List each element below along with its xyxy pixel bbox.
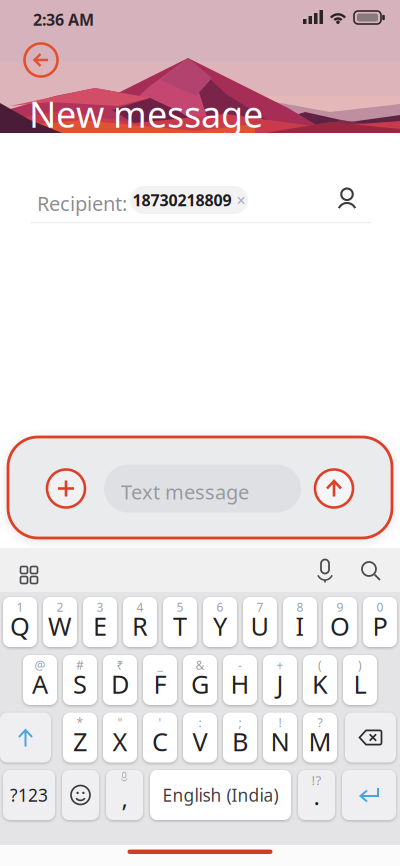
staticText: ' — [158, 714, 161, 730]
staticText: R — [132, 609, 148, 643]
button[interactable]: 6 — [203, 597, 237, 647]
staticText: 18730218809 — [132, 189, 231, 211]
staticText: * — [76, 714, 83, 730]
button[interactable]: - — [223, 655, 257, 705]
staticText: : — [198, 714, 201, 730]
staticText: T — [173, 609, 187, 643]
staticText: E — [93, 609, 107, 643]
button[interactable]: ; — [223, 712, 257, 762]
staticText: Q — [10, 609, 30, 643]
staticText: 4 — [136, 599, 143, 615]
button[interactable]: Comma — [106, 770, 143, 820]
button[interactable]: Add attachment — [47, 469, 85, 507]
staticText: . — [313, 780, 319, 812]
staticText: - — [238, 657, 242, 673]
staticText: S — [73, 667, 87, 701]
button[interactable]: Remove recipient 18730218809 — [130, 186, 248, 214]
staticText: 5 — [176, 599, 183, 615]
staticText: K — [312, 667, 328, 701]
button[interactable]: 1 — [3, 597, 37, 647]
button[interactable]: Shift — [0, 712, 51, 762]
button[interactable]: 4 — [123, 597, 157, 647]
staticText: Y — [213, 609, 227, 643]
button[interactable]: ( — [303, 655, 337, 705]
button[interactable]: 0 — [363, 597, 397, 647]
button[interactable]: ' — [143, 712, 177, 762]
staticText: & — [195, 657, 204, 673]
staticText: V — [192, 725, 207, 758]
staticText: Text message — [121, 478, 249, 505]
staticText: A — [32, 667, 48, 701]
button[interactable]: + — [263, 655, 297, 705]
button[interactable]: Symbols grid — [7, 553, 41, 587]
staticText: 2:36 AM — [33, 9, 94, 30]
button[interactable]: ?123 — [3, 770, 55, 820]
staticText: English (India) — [162, 783, 278, 806]
staticText: J — [276, 667, 283, 701]
staticText: " — [117, 714, 122, 730]
button[interactable]: _ — [143, 655, 177, 705]
button[interactable]: 5 — [163, 597, 197, 647]
button[interactable]: ) — [343, 655, 377, 705]
staticText: ! — [278, 714, 281, 730]
staticText: U — [250, 609, 269, 643]
button[interactable]: : — [183, 712, 217, 762]
button[interactable]: " — [103, 712, 137, 762]
staticText: !? — [311, 771, 321, 789]
staticText: C — [152, 725, 168, 758]
staticText: 8 — [296, 599, 303, 615]
staticText: M — [308, 725, 331, 758]
staticText: G — [191, 667, 209, 701]
button[interactable]: Back — [24, 43, 57, 76]
button[interactable]: * — [63, 712, 97, 762]
button[interactable]: Emoji — [62, 770, 99, 820]
button[interactable]: Enter — [342, 770, 396, 820]
staticText: F — [153, 667, 166, 701]
button[interactable]: @ — [23, 655, 57, 705]
button[interactable]: Send — [315, 469, 353, 507]
button[interactable]: 3 — [83, 597, 117, 647]
staticText: N — [270, 725, 289, 758]
staticText: 3 — [96, 599, 103, 615]
staticText: 9 — [336, 599, 343, 615]
button[interactable]: ! — [263, 712, 297, 762]
staticText: @ — [34, 657, 45, 673]
staticText: 7 — [256, 599, 263, 615]
button[interactable]: Voice input — [310, 556, 340, 586]
staticText: _ — [157, 657, 162, 673]
staticText: I — [295, 609, 304, 643]
staticText: ?123 — [10, 783, 48, 806]
staticText: × — [236, 189, 245, 211]
button[interactable]: Text message — [104, 464, 301, 512]
button[interactable]: ? — [303, 712, 337, 762]
staticText: X — [112, 725, 127, 758]
button[interactable]: 8 — [283, 597, 317, 647]
button[interactable]: 9 — [323, 597, 357, 647]
staticText: Z — [73, 725, 87, 758]
button[interactable]: Period — [298, 770, 335, 820]
staticText: B — [232, 725, 248, 758]
staticText: 2 — [56, 599, 63, 615]
staticText: W — [48, 609, 72, 643]
button[interactable]: Backspace — [345, 712, 396, 762]
button[interactable]: Search — [356, 556, 386, 586]
button[interactable]: # — [63, 655, 97, 705]
staticText: + — [276, 657, 283, 673]
staticText: H — [230, 667, 249, 701]
staticText: New message — [29, 90, 263, 138]
staticText: # — [76, 657, 84, 673]
button[interactable]: Space — [150, 770, 291, 820]
staticText: ; — [238, 714, 241, 730]
staticText: ₹ — [116, 657, 123, 673]
button[interactable]: 2 — [43, 597, 77, 647]
staticText: ) — [358, 657, 362, 673]
staticText: , — [121, 782, 127, 814]
button[interactable]: 7 — [243, 597, 277, 647]
staticText: ( — [318, 657, 322, 673]
staticText: O — [330, 609, 350, 643]
button[interactable]: Choose contact — [330, 183, 364, 217]
staticText: 1 — [16, 599, 23, 615]
staticText: 6 — [216, 599, 223, 615]
button[interactable]: ₹ — [103, 655, 137, 705]
button[interactable]: & — [183, 655, 217, 705]
